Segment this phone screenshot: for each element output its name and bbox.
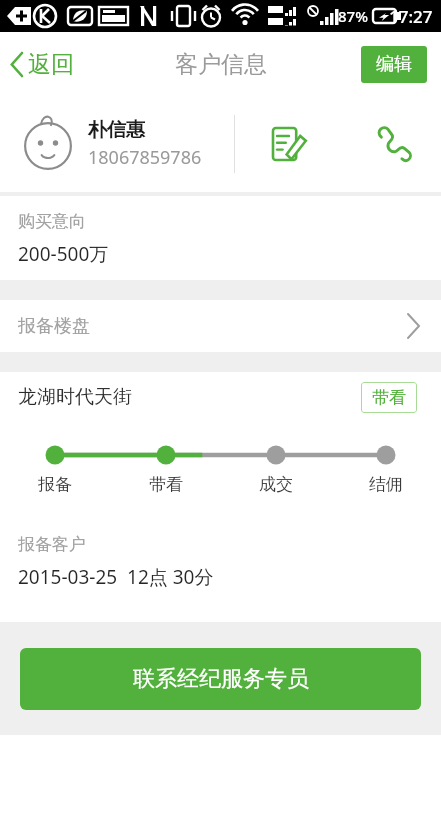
staticText: 报备客户: [18, 534, 86, 555]
button[interactable]: 联系经纪服务专员: [20, 648, 421, 710]
staticText: 带看: [149, 474, 183, 495]
staticText: 报备: [38, 474, 72, 495]
staticText: 编辑: [376, 53, 412, 76]
staticText: 龙湖时代天街: [18, 385, 132, 409]
staticText: 朴信惠: [88, 118, 145, 142]
staticText: 报备楼盘: [18, 315, 90, 338]
staticText: 87%: [338, 6, 368, 26]
button[interactable]: 带看: [361, 382, 417, 413]
staticText: 18067859786: [88, 145, 202, 170]
button[interactable]: Call: [343, 96, 441, 192]
staticText: 结佣: [369, 474, 403, 495]
button[interactable]: 报备楼盘: [0, 300, 441, 352]
button[interactable]: 编辑: [361, 46, 427, 83]
staticText: 购买意向: [18, 211, 86, 232]
staticText: 带看: [372, 387, 406, 408]
staticText: 联系经纪服务专员: [133, 665, 309, 693]
button[interactable]: Edit note: [235, 96, 343, 192]
staticText: 成交: [259, 474, 293, 495]
staticText: 200-500万: [18, 241, 109, 267]
staticText: 客户信息: [175, 50, 267, 79]
staticText: 返回: [28, 50, 74, 79]
button[interactable]: 返回: [0, 32, 90, 96]
staticText: 2015-03-25 12点 30分: [18, 564, 214, 590]
staticText: 17:27: [389, 5, 433, 28]
